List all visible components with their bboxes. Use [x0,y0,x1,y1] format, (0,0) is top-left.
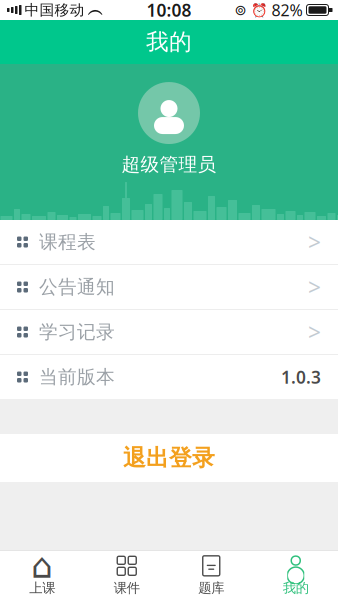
staticText: 中国移动 [24,1,84,19]
staticText: > [308,272,321,302]
staticText: 当前版本 [39,365,115,388]
staticText: ︵ [87,0,103,20]
staticText: 学习记录 [39,320,115,343]
button[interactable]: 学习记录 [0,310,338,354]
staticText: 10:08 [146,0,191,21]
staticText: 题库 [198,580,224,596]
button[interactable]: 题库 [169,551,253,600]
staticText: 上课 [29,580,55,596]
button[interactable]: 课程表 [0,220,338,264]
staticText: 我的 [146,28,192,56]
staticText: 课程表 [39,230,96,253]
button[interactable]: 课件 [84,551,169,600]
staticText: ⏰ [250,2,267,18]
staticText: ⌂ [31,546,53,585]
staticText: 退出登录 [123,444,215,472]
button[interactable]: 公告通知 [0,265,338,309]
staticText: 超级管理员 [121,153,216,176]
staticText: 公告通知 [39,275,115,298]
staticText: > [308,317,321,347]
staticText: 我的 [283,580,309,596]
staticText: 1.0.3 [281,365,321,388]
button[interactable]: 退出登录 [0,434,338,482]
button[interactable]: 当前版本 [0,355,338,399]
staticText: > [308,227,321,257]
button[interactable]: ⌂ [0,551,84,600]
staticText: 课件 [114,580,140,596]
staticText: ⊚ [234,2,246,18]
button[interactable]: 我的 [253,551,338,600]
staticText: 82% [271,0,302,21]
